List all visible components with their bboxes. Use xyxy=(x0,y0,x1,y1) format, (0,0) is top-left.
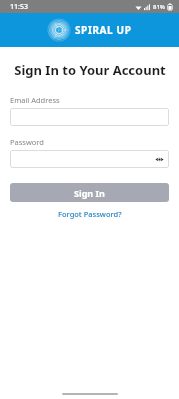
staticText: Sign In to Your Account xyxy=(14,61,166,79)
button[interactable]: Show password xyxy=(10,150,169,168)
staticText: 81% xyxy=(153,3,165,11)
staticText: Email Address xyxy=(10,95,60,105)
staticText: Password xyxy=(10,137,44,147)
button[interactable]: Show password xyxy=(153,153,165,165)
button[interactable]: Forgot Password? xyxy=(54,208,126,220)
staticText: SPIRAL UP xyxy=(75,23,132,37)
button[interactable]: Sign In xyxy=(10,183,169,202)
staticText: 11:53 xyxy=(10,2,28,12)
button[interactable] xyxy=(10,108,169,126)
staticText: Sign In xyxy=(74,187,105,199)
staticText: Forgot Password? xyxy=(58,209,122,219)
